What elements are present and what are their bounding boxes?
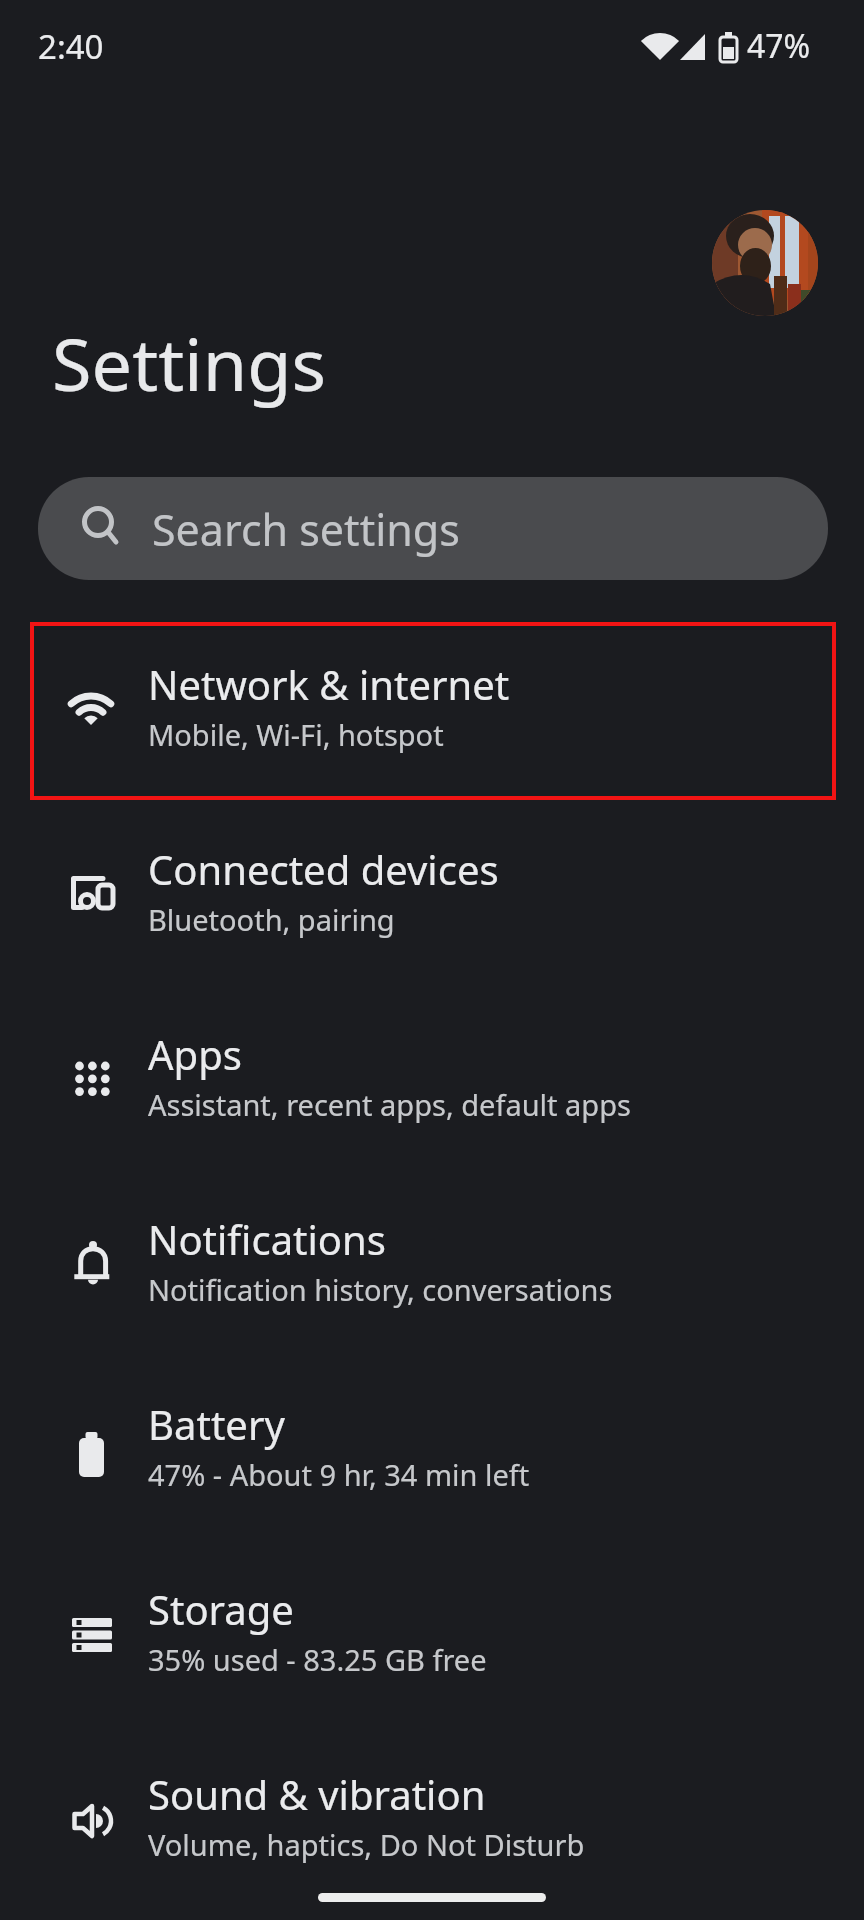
staticText: 35% used - 83.25 GB free (148, 1640, 487, 1679)
button[interactable]: Network & internet (0, 618, 864, 803)
button[interactable]: Search settings (38, 477, 828, 580)
button[interactable]: Storage (0, 1543, 864, 1728)
staticText: Storage (148, 1582, 294, 1636)
staticText: Bluetooth, pairing (148, 900, 395, 939)
button[interactable]: Sound & vibration (0, 1728, 864, 1913)
button[interactable] (712, 210, 818, 316)
staticText: Connected devices (148, 842, 499, 896)
staticText: Volume, haptics, Do Not Disturb (148, 1825, 585, 1864)
staticText: Network & internet (148, 657, 510, 711)
staticText: 47% (747, 24, 811, 68)
button[interactable]: Notifications (0, 1173, 864, 1358)
staticText: Notification history, conversations (148, 1270, 613, 1309)
button[interactable]: Connected devices (0, 803, 864, 988)
staticText: Battery (148, 1397, 285, 1451)
staticText: Mobile, Wi-Fi, hotspot (148, 715, 444, 754)
staticText: 47% - About 9 hr, 34 min left (148, 1455, 530, 1494)
staticText: Search settings (152, 500, 460, 559)
staticText: Notifications (148, 1212, 386, 1266)
staticText: Assistant, recent apps, default apps (148, 1085, 631, 1124)
staticText: Settings (52, 314, 326, 412)
staticText: Apps (148, 1027, 242, 1081)
staticText: 2:40 (38, 24, 104, 69)
button[interactable]: Battery (0, 1358, 864, 1543)
staticText: Sound & vibration (148, 1767, 486, 1821)
button[interactable]: Apps (0, 988, 864, 1173)
